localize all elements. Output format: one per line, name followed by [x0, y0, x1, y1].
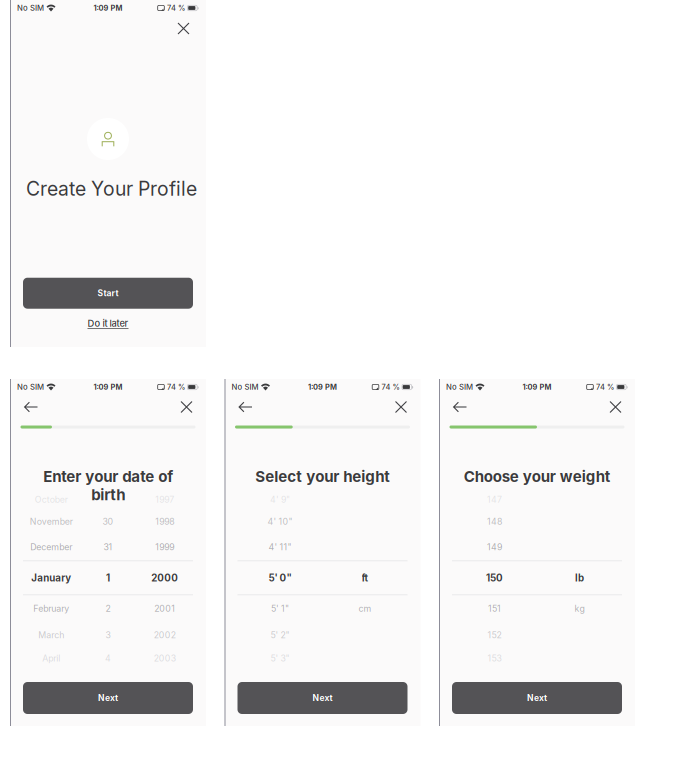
staticText: No SIM	[17, 382, 44, 392]
staticText: 149	[487, 542, 502, 552]
staticText: 5' 2"	[270, 630, 289, 640]
staticText: Next	[98, 693, 118, 703]
staticText: 2001	[154, 603, 175, 614]
staticText: 1:09 PM	[522, 382, 551, 391]
staticText: kg	[574, 603, 584, 614]
staticText: 74 %	[596, 382, 614, 391]
staticText: Start	[97, 288, 118, 298]
staticText: 1:09 PM	[93, 3, 122, 12]
staticText: ft	[361, 572, 368, 584]
staticText: 153	[487, 653, 501, 663]
staticText: March	[38, 630, 64, 640]
staticText: cm	[358, 603, 371, 614]
staticText: lb	[575, 572, 584, 584]
staticText: 2003	[154, 653, 176, 663]
staticText: 1	[106, 572, 110, 584]
staticText: No SIM	[446, 382, 473, 392]
staticText: 147	[487, 494, 502, 505]
button[interactable]: Close	[389, 395, 412, 418]
staticText: Choose your weight	[463, 467, 610, 486]
staticText: 5' 3"	[270, 653, 289, 663]
staticText: Enter your date of birth	[43, 467, 173, 504]
staticText: January	[31, 572, 71, 584]
staticText: 1999	[155, 542, 174, 552]
staticText: 4' 9"	[270, 494, 290, 505]
staticText: February	[33, 603, 69, 614]
staticText: 4	[105, 653, 111, 663]
staticText: 2000	[151, 572, 178, 584]
staticText: 2002	[154, 630, 176, 640]
staticText: 31	[103, 542, 112, 552]
staticText: No SIM	[231, 382, 258, 392]
staticText: Create Your Profile	[26, 177, 197, 200]
staticText: 3	[105, 630, 110, 640]
staticText: 1:09 PM	[308, 382, 337, 391]
button[interactable]: Close	[175, 395, 198, 418]
button[interactable]: Close	[604, 395, 627, 418]
staticText: 148	[487, 516, 502, 527]
button[interactable]: Next	[237, 682, 407, 714]
staticText: 152	[487, 630, 501, 640]
staticText: October	[35, 494, 68, 505]
staticText: 1997	[155, 494, 174, 505]
button[interactable]: Back	[447, 395, 473, 419]
staticText: 2	[105, 603, 110, 614]
button[interactable]: Back	[232, 395, 258, 419]
staticText: 74 %	[381, 382, 399, 391]
staticText: December	[30, 542, 72, 552]
staticText: April	[42, 653, 60, 663]
staticText: 5' 1"	[271, 603, 289, 614]
staticText: 4' 11"	[268, 542, 291, 552]
staticText: 1998	[155, 516, 174, 527]
button[interactable]: Next	[452, 682, 622, 714]
staticText: 74 %	[167, 382, 185, 391]
staticText: Next	[527, 693, 547, 703]
staticText: 4' 10"	[267, 516, 292, 527]
button[interactable]: Start	[23, 278, 193, 309]
button[interactable]: Next	[23, 682, 193, 714]
staticText: Select your height	[255, 467, 390, 486]
staticText: 151	[488, 603, 501, 614]
button[interactable]: Back	[18, 395, 44, 419]
staticText: 1:09 PM	[93, 382, 122, 391]
staticText: 30	[102, 516, 113, 527]
staticText: November	[30, 516, 73, 527]
staticText: No SIM	[17, 3, 44, 13]
staticText: Next	[312, 693, 332, 703]
button[interactable]: Do it later	[87, 318, 128, 329]
staticText: 150	[486, 572, 503, 584]
staticText: 74 %	[167, 3, 185, 12]
button[interactable]: Close	[172, 17, 195, 40]
staticText: 5' 0"	[268, 572, 291, 584]
staticText: Do it later	[87, 318, 128, 329]
